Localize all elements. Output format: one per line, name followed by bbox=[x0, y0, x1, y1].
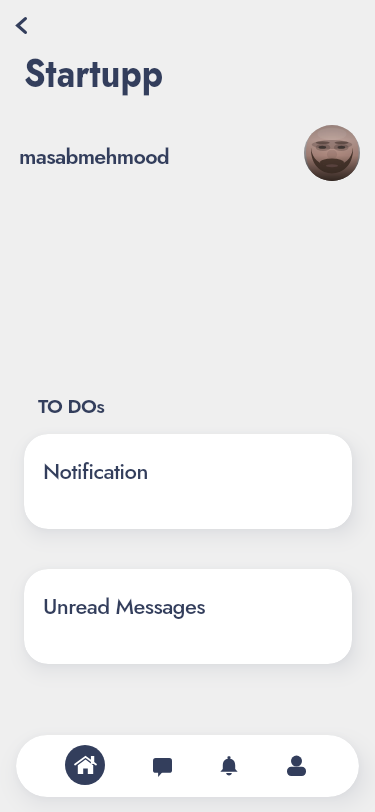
staticText: masabmehmood bbox=[19, 141, 170, 172]
staticText: TO DOs bbox=[38, 392, 105, 420]
button[interactable]: Profile photo bbox=[304, 125, 360, 181]
staticText: Startupp bbox=[24, 44, 163, 102]
button[interactable]: Messages bbox=[137, 742, 187, 792]
button[interactable]: Back bbox=[2, 6, 40, 44]
button[interactable]: Notification bbox=[24, 434, 352, 529]
staticText: Unread Messages bbox=[43, 590, 205, 622]
button[interactable]: Unread Messages bbox=[24, 569, 352, 664]
staticText: Notification bbox=[43, 455, 148, 487]
button[interactable]: Home bbox=[60, 740, 110, 790]
button[interactable]: Profile bbox=[271, 740, 321, 790]
button[interactable]: Notifications bbox=[204, 741, 254, 791]
